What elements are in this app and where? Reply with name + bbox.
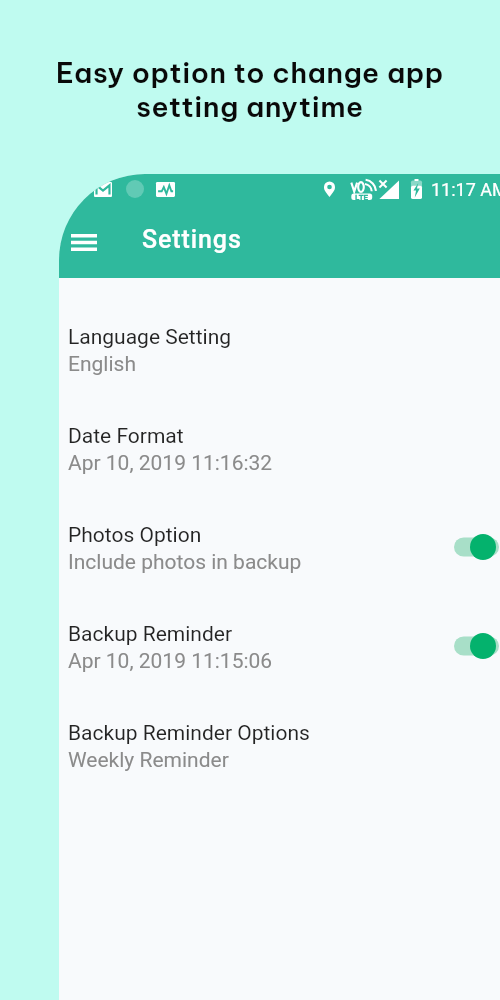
staticText: LTE — [355, 193, 369, 200]
staticText: Photos Option — [68, 523, 202, 548]
staticText: Easy option to change app setting anytim… — [0, 55, 500, 125]
button[interactable]: Photos Option — [59, 504, 500, 603]
staticText: Include photos in backup — [68, 550, 302, 575]
button[interactable]: Toggle setting on — [441, 626, 500, 666]
staticText: Date Format — [68, 424, 184, 449]
button[interactable]: Date Format — [59, 405, 500, 504]
staticText: 11:17 AM — [431, 179, 500, 200]
button[interactable]: Toggle setting on — [441, 527, 500, 567]
staticText: Apr 10, 2019 11:15:06 — [68, 649, 273, 674]
staticText: Language Setting — [68, 325, 232, 350]
button[interactable]: Backup Reminder — [59, 603, 500, 702]
staticText: Settings — [142, 225, 242, 254]
staticText: English — [68, 352, 136, 377]
staticText: Backup Reminder Options — [68, 721, 310, 746]
button[interactable]: Open navigation menu — [59, 217, 109, 267]
staticText: Apr 10, 2019 11:16:32 — [68, 451, 273, 476]
staticText: Weekly Reminder — [68, 748, 229, 773]
button[interactable]: Backup Reminder Options — [59, 702, 500, 801]
button[interactable]: Language Setting — [59, 306, 500, 405]
staticText: Backup Reminder — [68, 622, 233, 647]
